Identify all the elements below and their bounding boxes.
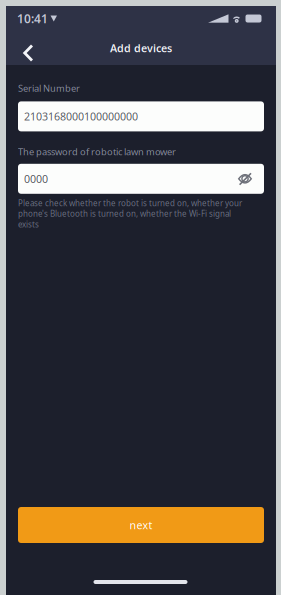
button[interactable]: Back	[6, 31, 43, 65]
staticText: 2103168000100000000	[24, 109, 138, 123]
staticText: next	[129, 518, 152, 532]
staticText: Serial Number	[18, 82, 80, 94]
button[interactable]: next	[18, 507, 264, 543]
staticText: The password of robotic lawn mower	[18, 145, 176, 158]
staticText: 0000	[24, 172, 48, 186]
button[interactable]: Show password	[228, 164, 258, 194]
staticText: Please check whether the robot is turned…	[18, 198, 242, 230]
staticText: 10:41	[17, 10, 48, 26]
staticText: Add devices	[110, 41, 172, 55]
